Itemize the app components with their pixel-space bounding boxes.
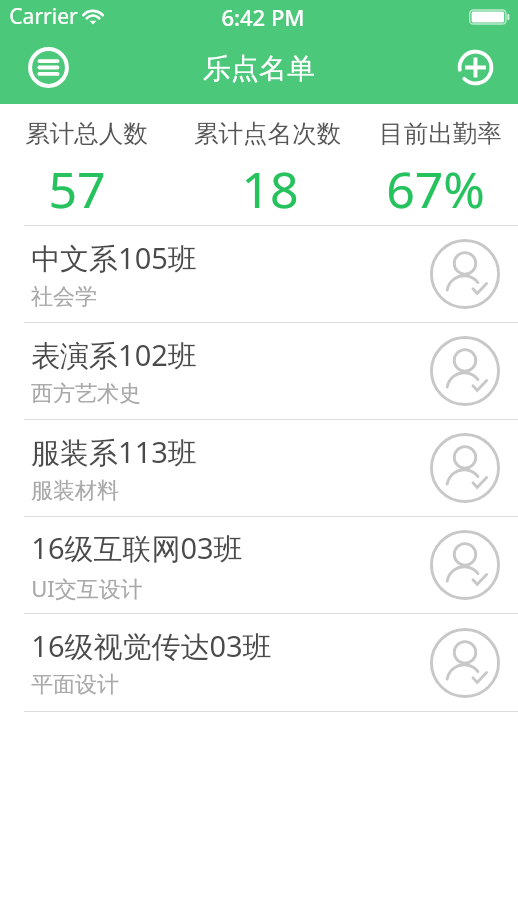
button[interactable]: 目前出勤率 xyxy=(362,104,518,225)
staticText: 18 xyxy=(241,155,299,223)
staticText: 16级视觉传达03班 xyxy=(31,626,272,666)
staticText: 中文系105班 xyxy=(31,238,197,278)
staticText: 服装系113班 xyxy=(31,432,197,472)
button[interactable]: 累计总人数 xyxy=(0,104,172,225)
staticText: 6:42 PM xyxy=(221,2,305,32)
staticText: 16级互联网03班 xyxy=(31,528,243,568)
button[interactable]: Add xyxy=(449,41,501,93)
staticText: Carrier xyxy=(9,2,78,31)
staticText: 乐点名单 xyxy=(203,51,315,86)
staticText: 平面设计 xyxy=(31,671,119,699)
button[interactable]: 表演系102班 xyxy=(0,323,518,419)
button[interactable]: 累计点名次数 xyxy=(172,104,362,225)
staticText: 服装材料 xyxy=(31,477,119,505)
staticText: UI交互设计 xyxy=(31,573,143,603)
staticText: 57 xyxy=(48,155,106,223)
staticText: 累计点名次数 xyxy=(194,118,341,149)
button[interactable]: 16级互联网03班 xyxy=(0,517,518,613)
staticText: 67% xyxy=(386,155,485,223)
button[interactable]: 16级视觉传达03班 xyxy=(0,614,518,711)
button[interactable]: 服装系113班 xyxy=(0,420,518,516)
staticText: 目前出勤率 xyxy=(379,118,502,149)
staticText: 表演系102班 xyxy=(31,335,197,375)
staticText: 社会学 xyxy=(31,283,97,311)
staticText: 西方艺术史 xyxy=(31,380,141,408)
staticText: 累计总人数 xyxy=(25,118,148,149)
button[interactable]: Menu xyxy=(22,41,74,93)
button[interactable]: 中文系105班 xyxy=(0,226,518,322)
